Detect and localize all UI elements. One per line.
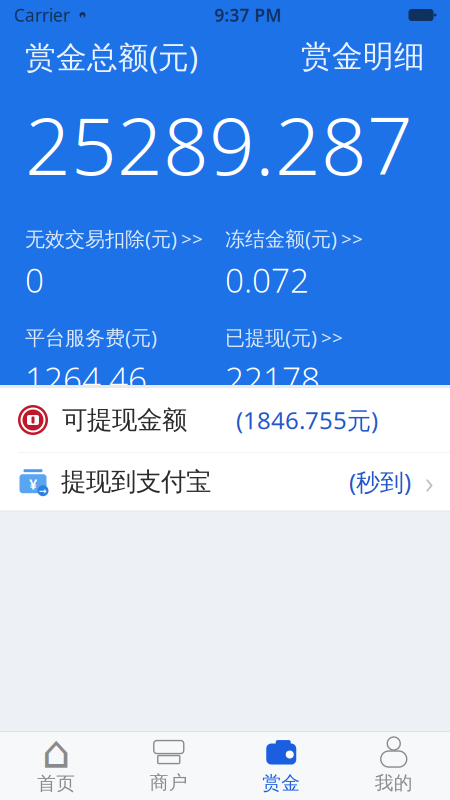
staticText: 25289.287 (25, 91, 413, 197)
staticText: 首页 (37, 772, 75, 795)
staticText: Carrier (14, 3, 70, 26)
staticText: › (425, 460, 433, 503)
staticText: >> (341, 226, 363, 251)
staticText: 平台服务费(元) (25, 324, 157, 351)
staticText: 冻结金额(元) (225, 225, 337, 252)
staticText: 22178 (225, 356, 320, 401)
staticText: 我的 (375, 771, 413, 794)
staticText: 0 (25, 258, 44, 302)
button[interactable]: 商户 (112, 732, 225, 800)
staticText: >> (181, 226, 203, 251)
staticText: >> (321, 325, 343, 350)
staticText: ¥ (29, 474, 37, 493)
button[interactable]: ⌂ (0, 732, 112, 800)
button[interactable]: 冻结金额(元) (225, 225, 425, 302)
staticText: 无效交易扣除(元) (25, 225, 177, 252)
staticText: → (39, 485, 47, 496)
staticText: 可提现金额 (62, 404, 187, 435)
staticText: 提现到支付宝 (61, 466, 211, 497)
staticText: 赏金明细 (301, 38, 425, 75)
button[interactable]: 赏金明细 (301, 38, 425, 75)
staticText: ⌂ (42, 726, 71, 778)
button[interactable]: ¥ (0, 453, 450, 511)
button[interactable]: 赏金 (225, 732, 337, 800)
staticText: (1846.755元) (236, 404, 378, 436)
staticText: 0.072 (225, 258, 309, 302)
button[interactable]: 可提现金额 (0, 388, 450, 452)
button[interactable]: 平台服务费(元) (25, 324, 225, 401)
button[interactable]: 我的 (337, 732, 450, 800)
staticText: 商户 (150, 771, 188, 794)
button[interactable]: 已提现(元) (225, 324, 425, 401)
staticText: (秒到) (349, 466, 411, 498)
staticText: 已提现(元) (225, 324, 317, 351)
staticText: 赏金总额(元) (25, 36, 198, 77)
staticText: 1264.46 (25, 356, 147, 401)
staticText: 9:37 PM (214, 3, 281, 26)
staticText: 赏金 (262, 771, 300, 794)
button[interactable]: 无效交易扣除(元) (25, 225, 225, 302)
